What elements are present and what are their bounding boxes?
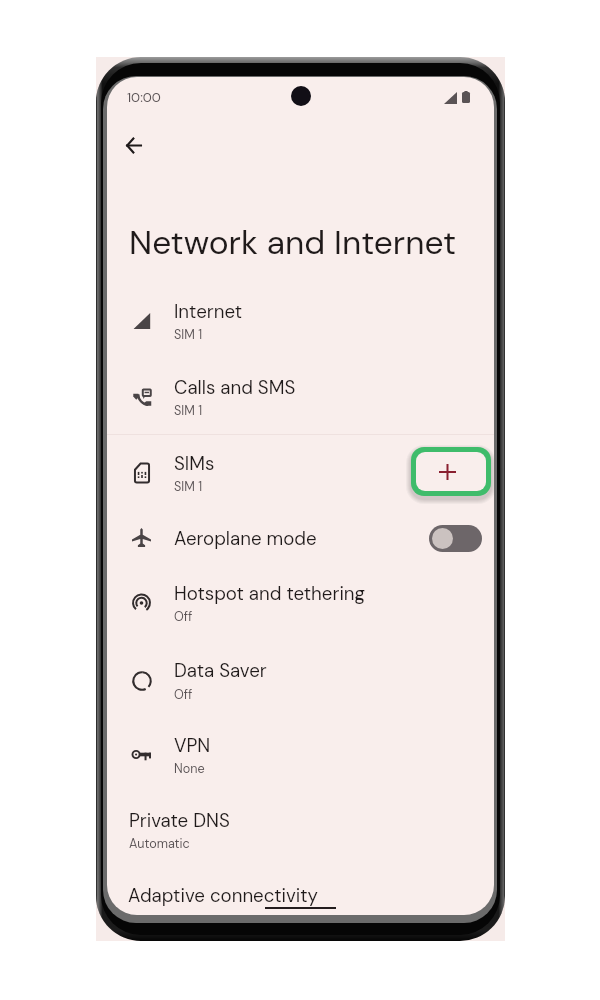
staticText: Network and Internet [129, 221, 457, 265]
staticText: Internet [174, 299, 243, 323]
staticText: SIMs [174, 451, 215, 475]
button[interactable] [107, 285, 494, 361]
staticText: Data Saver [174, 658, 267, 682]
button[interactable] [107, 437, 494, 513]
staticText: None [174, 761, 205, 777]
button[interactable]: Back [110, 121, 158, 169]
button[interactable] [107, 567, 494, 643]
button[interactable] [107, 361, 494, 437]
staticText: SIM 1 [174, 479, 203, 495]
staticText: Off [174, 687, 193, 703]
button[interactable] [107, 719, 494, 795]
staticText: Automatic [129, 836, 190, 852]
staticText: SIM 1 [174, 327, 203, 343]
button[interactable] [107, 644, 494, 720]
staticText: Aeroplane mode [174, 526, 317, 550]
staticText: 10:00 [127, 89, 161, 106]
staticText: Private DNS [129, 808, 230, 832]
staticText: Calls and SMS [174, 375, 296, 399]
button[interactable]: Add SIM [416, 452, 486, 491]
staticText: Adaptive connectivity [128, 883, 319, 907]
staticText: SIM 1 [174, 403, 203, 419]
staticText: VPN [174, 733, 211, 757]
button[interactable]: Aeroplane mode toggle [429, 525, 482, 552]
button[interactable] [107, 794, 494, 870]
button[interactable] [107, 512, 494, 568]
staticText: Hotspot and tethering [174, 581, 366, 605]
staticText: Off [174, 609, 193, 625]
button[interactable] [107, 869, 494, 915]
